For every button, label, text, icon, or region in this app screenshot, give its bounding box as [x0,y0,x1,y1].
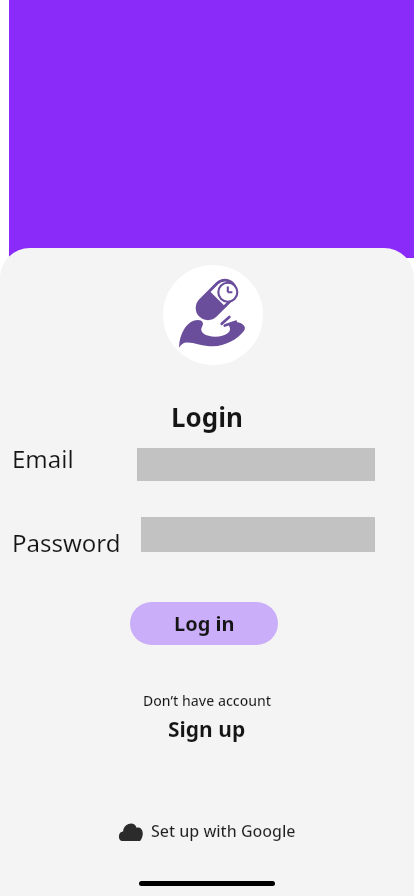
staticText: Login [171,399,243,434]
other: App logo [175,277,251,353]
other: Google [119,822,143,841]
staticText: Sign up [168,715,246,744]
button[interactable]: Google [0,819,414,843]
button[interactable]: Sign up [168,715,246,744]
button[interactable]: Log in [130,602,278,645]
staticText: Set up with Google [151,820,296,842]
staticText: Log in [174,610,235,637]
staticText: Email [12,442,74,475]
staticText: Don’t have account [143,691,272,710]
staticText: Password [12,526,121,559]
